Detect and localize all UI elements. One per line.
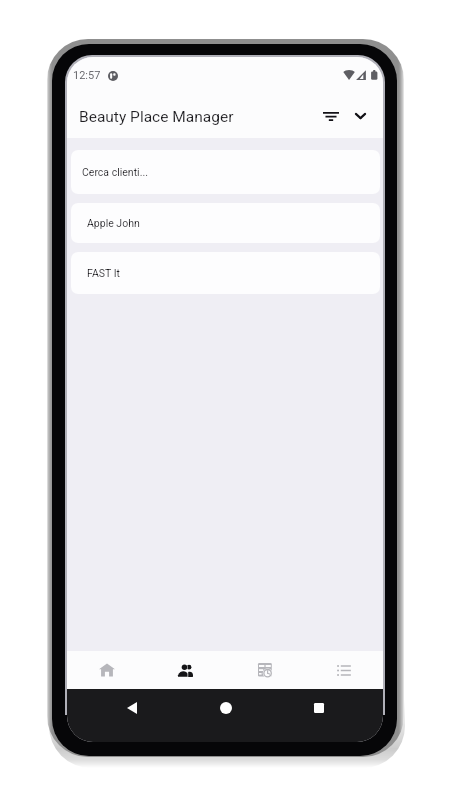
staticText: FAST It bbox=[87, 267, 120, 279]
button[interactable]: Recent apps bbox=[272, 689, 365, 726]
button[interactable]: Home bbox=[67, 651, 146, 689]
button[interactable]: Clients bbox=[146, 651, 225, 689]
staticText: Cerca clienti... bbox=[82, 166, 148, 178]
button[interactable]: Back bbox=[85, 689, 179, 726]
button[interactable]: Appointments bbox=[225, 651, 304, 689]
staticText: Apple John bbox=[87, 217, 140, 229]
button[interactable]: Filter bbox=[314, 99, 348, 133]
button[interactable]: Cerca clienti... bbox=[71, 150, 380, 194]
button[interactable]: Home bbox=[179, 689, 272, 726]
staticText: 12:57 bbox=[73, 69, 101, 82]
button[interactable]: FAST It bbox=[71, 252, 380, 294]
button[interactable]: Apple John bbox=[71, 203, 380, 243]
button[interactable]: Services bbox=[304, 651, 383, 689]
staticText: Beauty Place Manager bbox=[79, 108, 234, 126]
button[interactable]: Expand menu bbox=[343, 99, 377, 133]
